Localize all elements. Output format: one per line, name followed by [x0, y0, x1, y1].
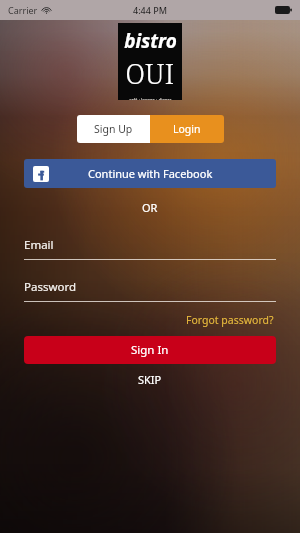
- staticText: Sign Up: [94, 122, 133, 136]
- staticText: Carrier: [8, 4, 38, 16]
- staticText: OUI: [125, 55, 175, 92]
- button[interactable]: SKIP: [126, 369, 174, 390]
- staticText: 4:44 PM: [133, 4, 167, 16]
- other: Facebook: [33, 166, 49, 182]
- button[interactable]: Continue with Facebook: [24, 159, 276, 188]
- staticText: Login: [173, 122, 201, 136]
- staticText: Continue with Facebook: [88, 166, 213, 181]
- staticText: SKIP: [138, 372, 162, 387]
- staticText: OR: [142, 200, 158, 215]
- staticText: Email: [24, 237, 54, 253]
- staticText: Sign In: [131, 342, 169, 358]
- button[interactable]: Sign In: [24, 336, 276, 364]
- button[interactable]: Login: [150, 115, 224, 143]
- button[interactable]: Email: [24, 237, 276, 260]
- staticText: café · lounge · dinner: [129, 97, 172, 100]
- staticText: Forgot password?: [186, 313, 274, 327]
- button[interactable]: Forgot password?: [184, 311, 276, 329]
- button[interactable]: Password: [24, 279, 276, 302]
- staticText: bistro: [124, 28, 177, 54]
- staticText: Password: [24, 279, 77, 295]
- button[interactable]: Sign Up: [77, 115, 150, 143]
